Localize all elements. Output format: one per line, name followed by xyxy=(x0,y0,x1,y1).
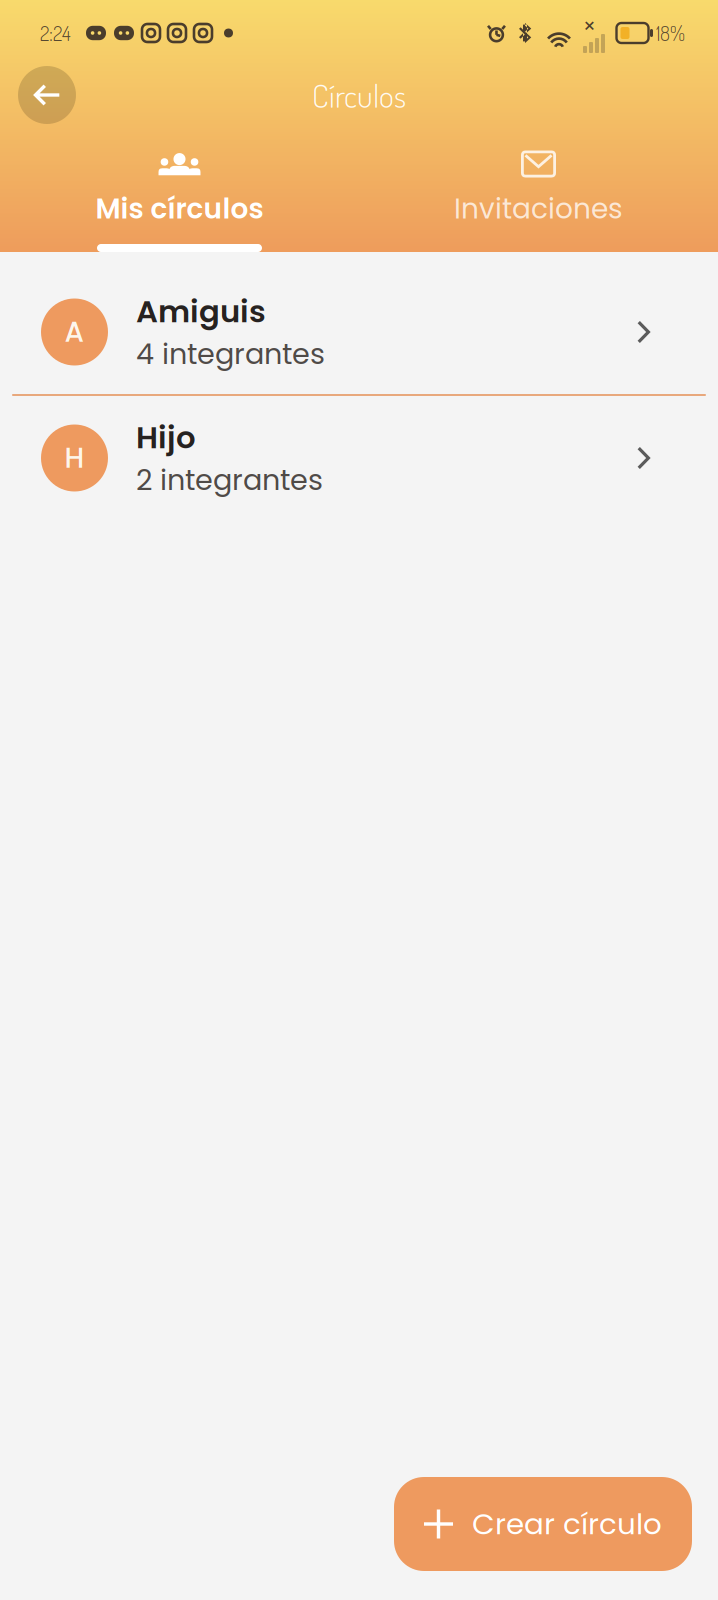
staticText: Mis círculos xyxy=(95,189,263,228)
staticText: H xyxy=(64,438,84,478)
staticText: Invitaciones xyxy=(454,189,623,228)
staticText: × xyxy=(583,12,596,40)
staticText: Amiguis xyxy=(136,290,266,333)
staticText: 4 integrantes xyxy=(136,334,325,374)
staticText: Círculos xyxy=(312,75,406,115)
staticText: 2:24 xyxy=(40,20,71,46)
staticText: A xyxy=(64,312,84,352)
staticText: Crear círculo xyxy=(472,1503,662,1545)
button[interactable]: Crear círculo xyxy=(394,1477,692,1571)
button[interactable]: H xyxy=(0,396,718,520)
staticText: 2 integrantes xyxy=(136,460,323,500)
button[interactable]: A xyxy=(0,270,718,394)
button[interactable]: Mis círculos xyxy=(0,124,359,252)
staticText: 18% xyxy=(656,20,685,46)
staticText: Hijo xyxy=(136,416,196,459)
button[interactable]: Back xyxy=(18,66,76,124)
button[interactable]: Invitaciones xyxy=(359,124,718,252)
